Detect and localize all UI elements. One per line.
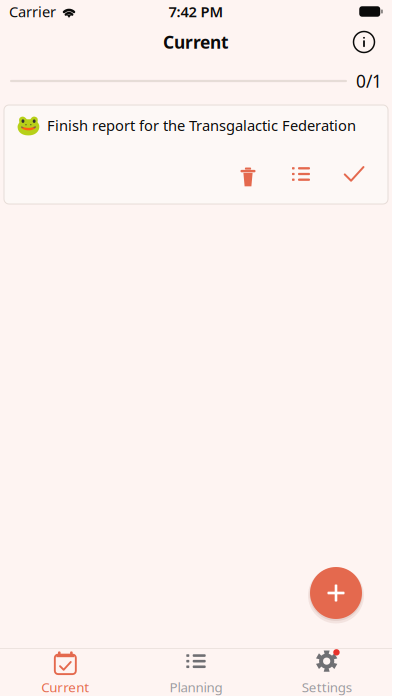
staticText: Current <box>41 678 89 696</box>
button[interactable]: Task details <box>283 161 319 187</box>
staticText: 0/1 <box>356 69 382 92</box>
staticText: Planning <box>169 678 222 696</box>
button[interactable]: Delete task <box>230 161 266 187</box>
staticText: Current <box>163 30 229 53</box>
button[interactable]: Complete task <box>336 161 372 187</box>
staticText: Settings <box>302 678 352 696</box>
staticText: 🐸 <box>16 114 41 137</box>
button[interactable]: Planning <box>131 649 261 695</box>
staticText: Finish report for the Transgalactic Fede… <box>47 116 356 135</box>
button[interactable]: Settings <box>261 649 392 695</box>
button[interactable]: Information <box>352 30 376 54</box>
button[interactable]: Current <box>0 649 131 695</box>
button[interactable]: Add task <box>307 564 365 622</box>
staticText: Carrier <box>9 2 56 21</box>
staticText: 7:42 PM <box>168 2 223 21</box>
